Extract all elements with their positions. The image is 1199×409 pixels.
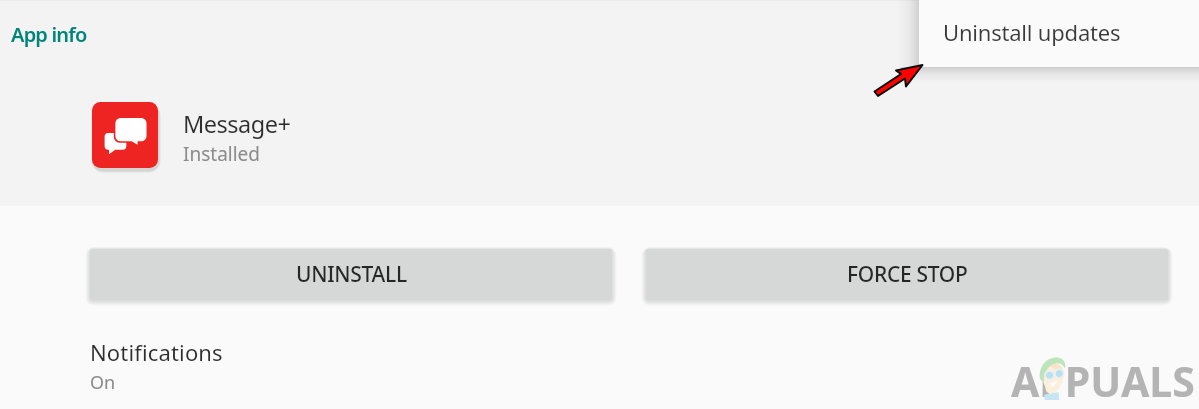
other: Annotation arrow: [0, 0, 1199, 409]
button[interactable]: App info: [11, 21, 87, 48]
button[interactable]: Uninstall updates: [919, 0, 1199, 67]
staticText: App info: [11, 21, 87, 48]
staticText: UNINSTALL: [296, 260, 407, 289]
button[interactable]: Notifications: [0, 326, 1199, 409]
staticText: Message+: [183, 108, 291, 140]
staticText: FORCE STOP: [847, 260, 968, 289]
staticText: APPUALS: [1011, 353, 1195, 409]
staticText: Installed: [183, 141, 261, 167]
staticText: On: [90, 370, 116, 395]
button[interactable]: UNINSTALL: [90, 249, 612, 300]
button[interactable]: Message+: [0, 80, 1199, 190]
staticText: Uninstall updates: [943, 17, 1121, 47]
staticText: Notifications: [90, 337, 223, 367]
button[interactable]: FORCE STOP: [646, 249, 1168, 300]
